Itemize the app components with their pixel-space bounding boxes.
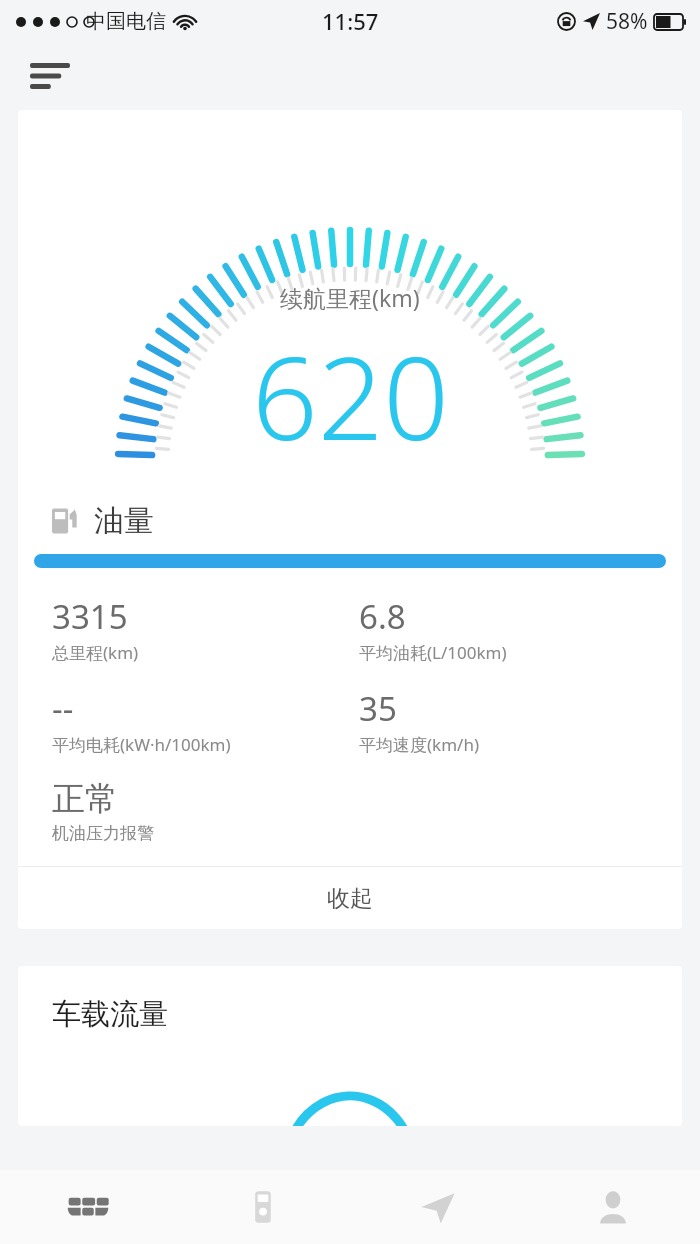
staticText: 6.8 xyxy=(359,594,406,639)
staticText: 总里程(km) xyxy=(52,641,139,664)
staticText: 平均油耗(L/100km) xyxy=(359,641,507,664)
staticText: 3315 xyxy=(52,594,128,639)
staticText: 收起 xyxy=(327,884,373,913)
staticText: 11:57 xyxy=(322,6,379,36)
button[interactable]: Vehicle xyxy=(0,1170,175,1244)
staticText: 平均速度(km/h) xyxy=(359,733,480,756)
staticText: 正常 xyxy=(52,778,118,820)
staticText: 油量 xyxy=(94,502,154,540)
button[interactable]: 车载流量 xyxy=(18,966,682,1126)
button[interactable]: 收起 xyxy=(18,867,682,929)
button[interactable]: Menu xyxy=(24,50,76,102)
staticText: 机油压力报警 xyxy=(52,823,154,844)
button[interactable]: Remote xyxy=(175,1170,350,1244)
staticText: 车载流量 xyxy=(52,996,168,1033)
staticText: 续航里程(km) xyxy=(280,282,420,313)
staticText: 35 xyxy=(359,686,397,731)
staticText: 58% xyxy=(606,7,648,36)
staticText: 中国电信 xyxy=(86,9,166,34)
staticText: 620 xyxy=(252,317,449,474)
button[interactable]: Navigation xyxy=(350,1170,525,1244)
staticText: 平均电耗(kW·h/100km) xyxy=(52,733,231,756)
button[interactable]: Profile xyxy=(525,1170,700,1244)
staticText: -- xyxy=(52,686,74,731)
